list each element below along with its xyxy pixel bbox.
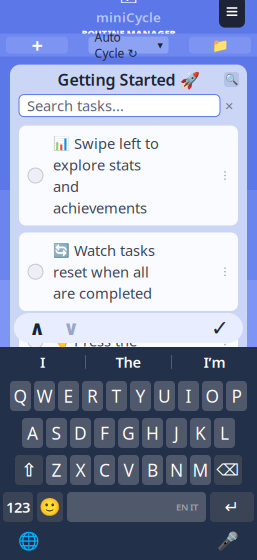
button[interactable]: Q	[10, 381, 31, 411]
staticText: and	[53, 176, 79, 196]
staticText: achievements	[53, 198, 147, 217]
button[interactable]: R	[82, 381, 103, 411]
staticText: A	[27, 421, 38, 444]
button[interactable]: The	[86, 349, 171, 375]
staticText: S	[51, 421, 61, 444]
staticText: explore stats	[53, 155, 141, 175]
staticText: Watch tasks	[74, 240, 155, 260]
staticText: Press the	[74, 331, 137, 351]
staticText: E	[63, 384, 73, 407]
button[interactable]: J	[166, 418, 187, 448]
staticText: L	[220, 421, 229, 444]
button[interactable]: Confirm	[203, 313, 237, 343]
staticText: I’m	[203, 352, 225, 372]
button[interactable]: Folders	[189, 37, 251, 54]
button[interactable]: Move down	[54, 313, 88, 343]
button[interactable]: U	[154, 381, 175, 411]
staticText: 🔄	[53, 243, 70, 258]
staticText: 🌐	[18, 531, 40, 551]
staticText: ▾	[157, 39, 162, 51]
staticText: 123	[6, 497, 30, 517]
button[interactable]: N	[166, 455, 187, 485]
button[interactable]: Move up	[20, 313, 54, 343]
button[interactable]: X	[70, 455, 91, 485]
staticText: Auto Cycle ↻	[94, 29, 137, 61]
button[interactable]: 123	[3, 492, 33, 522]
button[interactable]: W	[34, 381, 55, 411]
button[interactable]: Search	[224, 72, 239, 87]
staticText: U	[158, 384, 171, 407]
button[interactable]: M	[190, 455, 211, 485]
staticText: The	[115, 352, 141, 372]
button[interactable]: Change keyboard	[14, 526, 44, 556]
button[interactable]: E	[58, 381, 79, 411]
staticText: V	[123, 458, 133, 481]
button[interactable]: O	[202, 381, 223, 411]
staticText: X	[75, 458, 85, 481]
button[interactable]: Emoji	[37, 492, 63, 522]
staticText: J	[174, 421, 179, 444]
staticText: O	[205, 384, 219, 407]
staticText: D	[74, 421, 87, 444]
staticText: Swipe left to	[74, 134, 159, 153]
button[interactable]: I	[178, 381, 199, 411]
staticText: T	[111, 384, 121, 407]
staticText: C	[99, 458, 110, 481]
button[interactable]: A	[22, 418, 43, 448]
staticText: W	[36, 384, 52, 407]
button[interactable]: L	[214, 418, 235, 448]
staticText: ROUTINE MANAGER	[81, 27, 175, 39]
staticText: Z	[51, 458, 61, 481]
button[interactable]: Z	[46, 455, 67, 485]
button[interactable]: V	[118, 455, 139, 485]
staticText: F	[100, 421, 109, 444]
button[interactable]: Task options	[216, 257, 234, 287]
button[interactable]: I’m	[172, 349, 257, 375]
button[interactable]: S	[46, 418, 67, 448]
staticText: I	[185, 384, 191, 407]
staticText: K	[195, 421, 206, 444]
staticText: 👆	[53, 333, 70, 348]
button[interactable]: P	[226, 381, 247, 411]
button[interactable]: Dictation	[213, 526, 243, 556]
button[interactable]: Task options	[216, 326, 234, 356]
button[interactable]: G	[118, 418, 139, 448]
button[interactable]: Complete task	[28, 333, 43, 348]
staticText: N	[170, 458, 183, 481]
staticText: B	[147, 458, 158, 481]
staticText: ∨	[63, 317, 79, 339]
staticText: 🔍	[225, 73, 238, 86]
button[interactable]: B	[142, 455, 163, 485]
button[interactable]: T	[106, 381, 127, 411]
button[interactable]: Auto Cycle ↻	[88, 37, 168, 54]
button[interactable]: Add task	[6, 37, 68, 54]
button[interactable]: F	[94, 418, 115, 448]
button[interactable]: Task options	[216, 160, 234, 190]
button[interactable]: ↵	[210, 492, 254, 522]
staticText: 🙂	[39, 497, 61, 517]
staticText: ×	[225, 96, 233, 115]
staticText: P	[231, 384, 241, 407]
button[interactable]: H	[142, 418, 163, 448]
button[interactable]: Search tasks...	[19, 95, 220, 117]
button[interactable]: Menu	[219, 0, 245, 28]
staticText: M	[192, 458, 208, 481]
button[interactable]: ⌫	[214, 455, 242, 485]
staticText: miniCycle	[96, 8, 161, 26]
staticText: EN IT	[176, 501, 198, 513]
button[interactable]: ⇧	[15, 455, 43, 485]
button[interactable]: Space	[67, 492, 206, 522]
staticText: 🎤	[217, 531, 239, 551]
staticText: ☑	[119, 0, 138, 8]
button[interactable]: Complete task	[28, 264, 43, 279]
button[interactable]: I	[0, 349, 85, 375]
button[interactable]: K	[190, 418, 211, 448]
staticText: 📁	[211, 37, 228, 53]
button[interactable]: Y	[130, 381, 151, 411]
button[interactable]: D	[70, 418, 91, 448]
button[interactable]: Clear search	[220, 95, 238, 117]
staticText: ↵	[224, 497, 239, 517]
button[interactable]: Complete task	[28, 168, 43, 183]
button[interactable]: C	[94, 455, 115, 485]
staticText: 📊	[53, 136, 70, 151]
